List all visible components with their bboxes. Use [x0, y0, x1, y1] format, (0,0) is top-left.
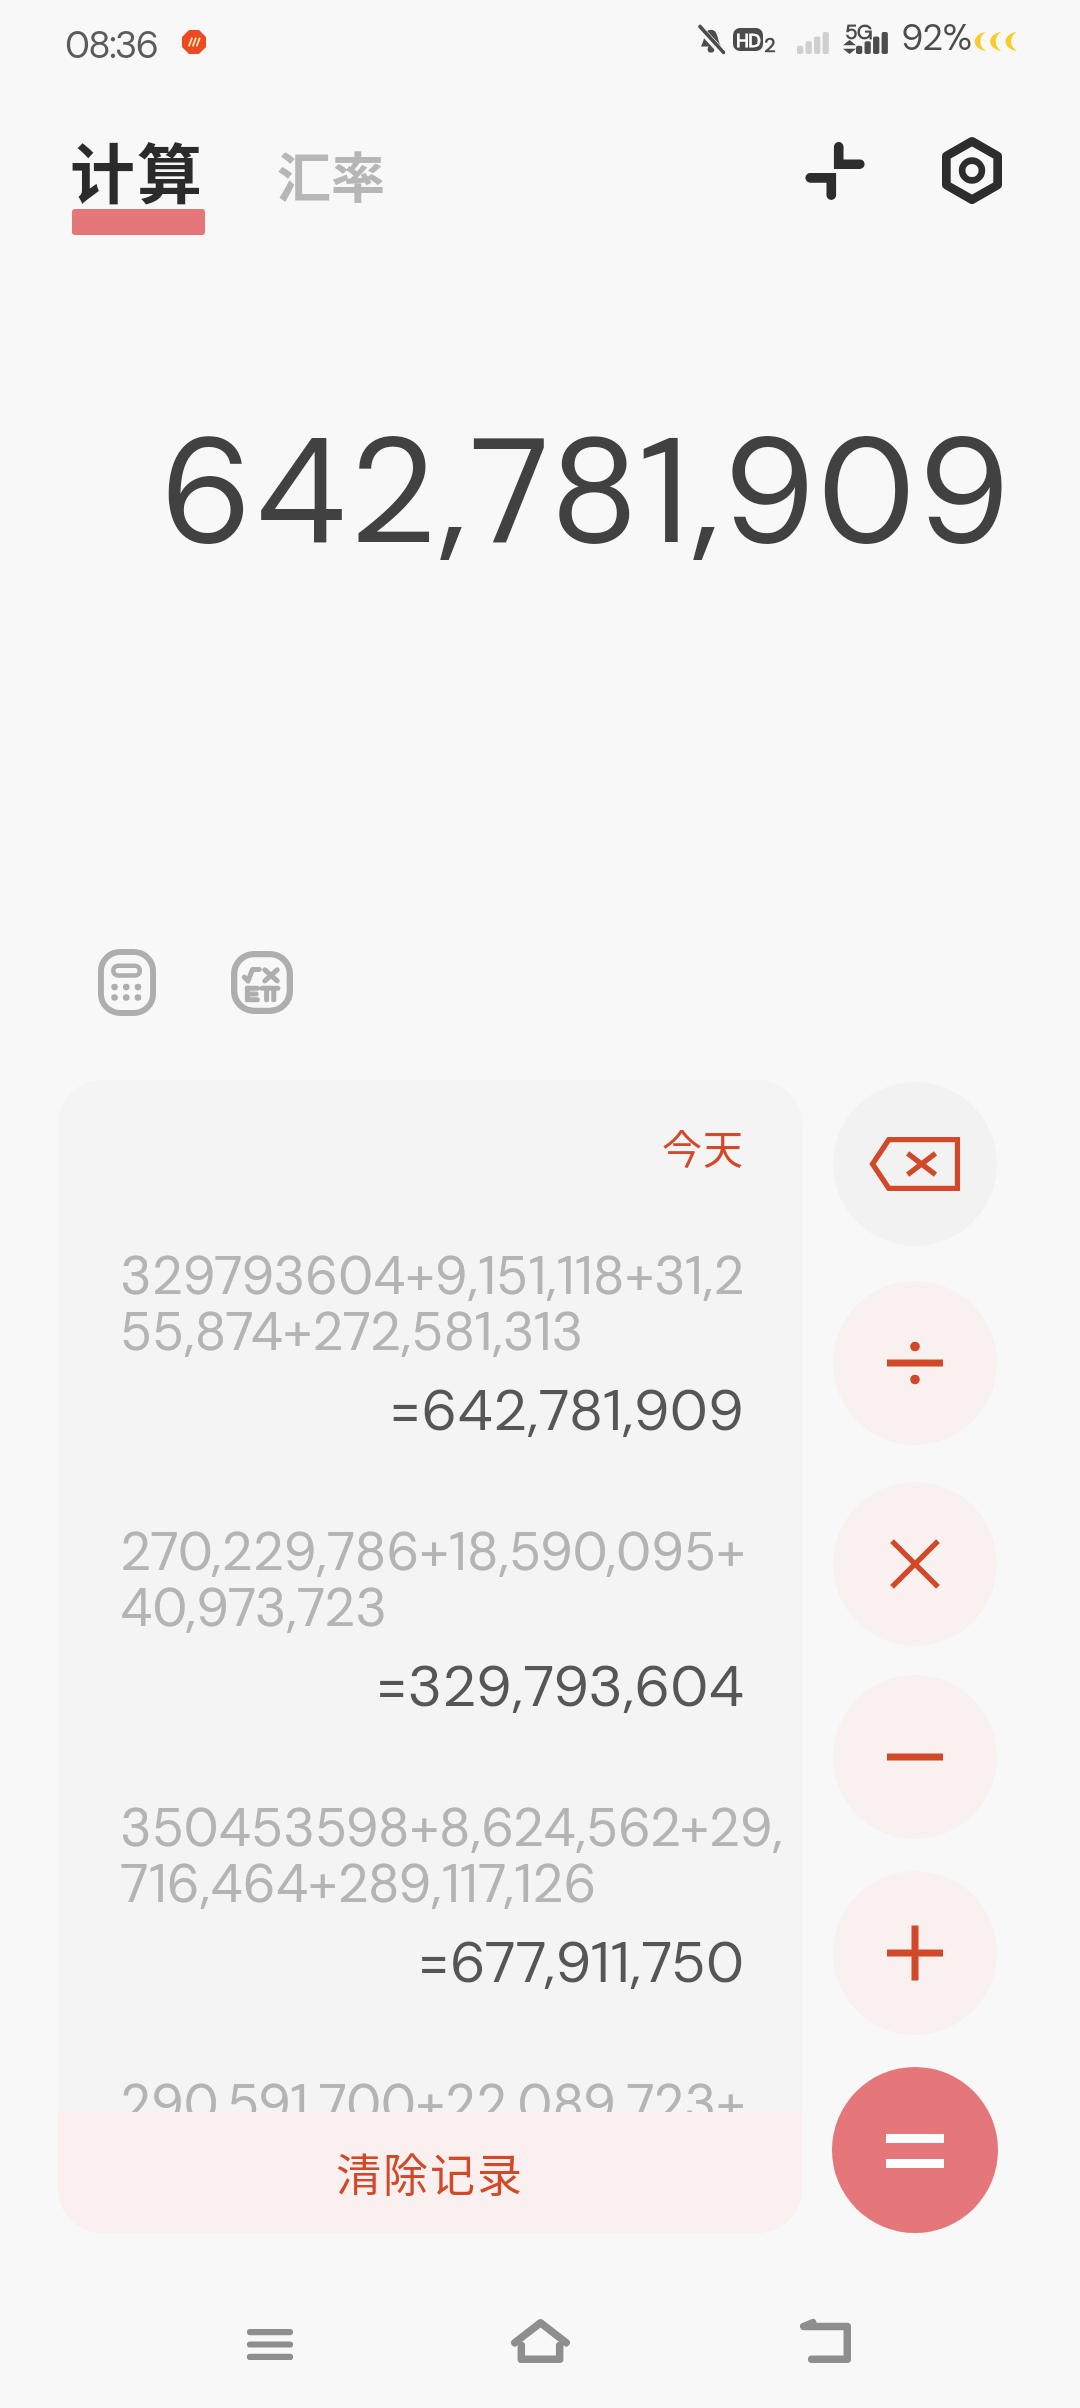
button[interactable]: Minus [833, 1675, 997, 1839]
staticText: HD [736, 28, 761, 51]
button[interactable]: 汇率 [277, 135, 385, 213]
staticText: 5G [845, 18, 872, 45]
button[interactable]: Divide [833, 1281, 997, 1445]
button[interactable]: Plus [833, 1871, 997, 2035]
button[interactable]: Scientific calculator [213, 929, 310, 1035]
button[interactable]: Home [492, 2297, 588, 2385]
button[interactable]: Multiply [833, 1482, 997, 1646]
button[interactable]: Equals [832, 2067, 998, 2233]
button[interactable]: Settings [922, 120, 1022, 220]
staticText: 290,591,700+22,089,723+ [120, 2069, 746, 2138]
button[interactable]: 清除记录 [58, 2112, 802, 2233]
staticText: 今天 [662, 1118, 744, 1176]
staticText: 计算 [70, 123, 205, 217]
button[interactable]: Recent apps [222, 2302, 318, 2386]
staticText: 92% [901, 14, 972, 61]
staticText: =677,911,750 [417, 1924, 744, 2000]
button[interactable]: Backspace [833, 1082, 997, 1246]
staticText: =329,793,604 [375, 1648, 744, 1724]
button[interactable]: 计算 [66, 118, 211, 242]
button[interactable]: Resize window [785, 121, 885, 221]
staticText: 642,781,909 [160, 394, 1013, 588]
staticText: 350453598+8,624,562+29, 716,464+289,117,… [120, 1793, 783, 1919]
staticText: 329793604+9,151,118+31,2 55,874+272,581,… [120, 1241, 745, 1367]
staticText: 270,229,786+18,590,095+ 40,973,723 [120, 1517, 746, 1643]
staticText: =642,781,909 [389, 1372, 744, 1448]
staticText: 2 [764, 32, 776, 58]
button[interactable]: Basic calculator [78, 929, 175, 1035]
staticText: 08:36 [65, 20, 158, 69]
staticText: 清除记录 [336, 2140, 525, 2205]
button[interactable]: Back [777, 2297, 873, 2385]
